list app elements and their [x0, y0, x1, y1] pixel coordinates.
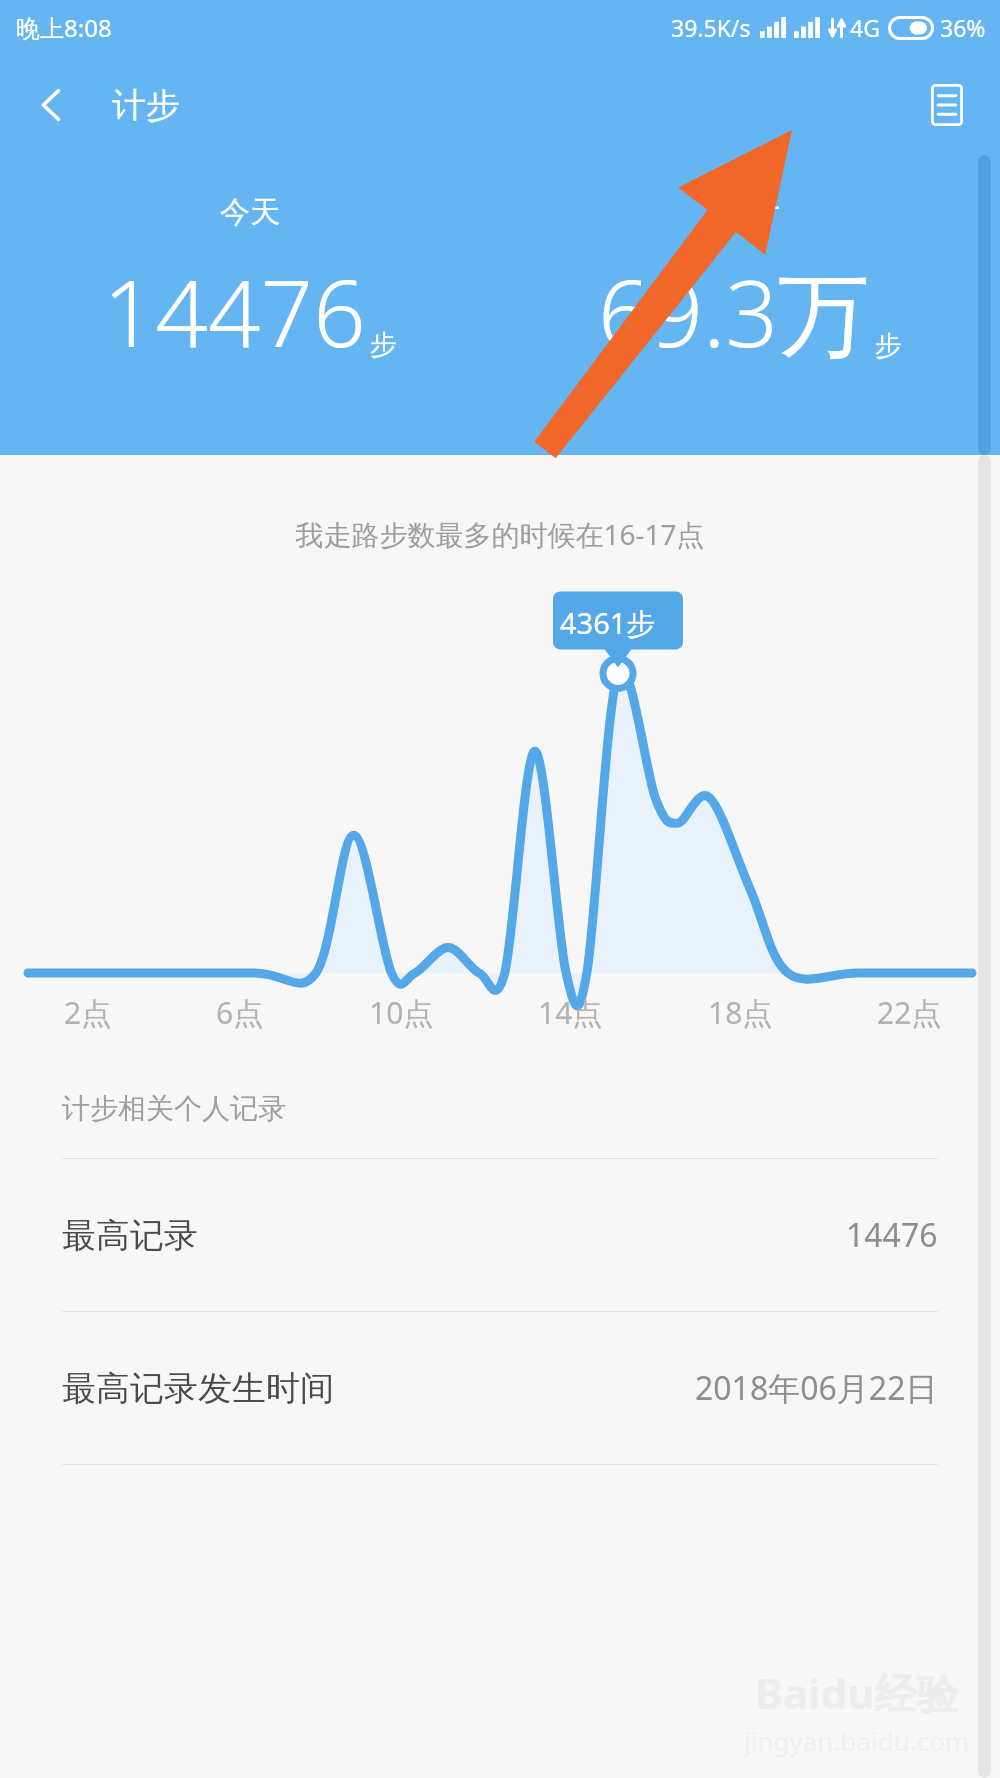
staticText: Baidu经验 [755, 1664, 959, 1721]
staticText: 14476 [846, 1213, 938, 1257]
staticText: 晚上8:08 [16, 11, 112, 44]
staticText: 36% [940, 12, 986, 43]
staticText: 4G [850, 12, 880, 43]
staticText: 计步 [112, 84, 180, 127]
staticText: 步 [370, 328, 397, 362]
button[interactable]: Menu [914, 72, 980, 138]
staticText: 我走路步数最多的时候在16-17点 [0, 515, 1000, 553]
staticText: 18点 [708, 992, 773, 1033]
staticText: 10点 [369, 992, 434, 1033]
button[interactable]: Back [20, 73, 84, 137]
staticText: 今天 [220, 193, 280, 231]
staticText: 14476 [103, 249, 366, 374]
staticText: 22点 [877, 992, 942, 1033]
button[interactable]: 最高记录发生时间 [0, 1312, 1000, 1464]
staticText: 39.5K/s [671, 12, 751, 43]
staticText: 6点 [216, 992, 264, 1033]
staticText: 2018年06月22日 [695, 1366, 938, 1410]
staticText: 总计 [720, 193, 780, 231]
staticText: 4361步 [560, 603, 656, 643]
staticText: 最高记录 [62, 1214, 198, 1257]
staticText: 最高记录发生时间 [62, 1367, 334, 1410]
staticText: 69.3万 [598, 249, 871, 375]
staticText: 步 [875, 329, 902, 363]
staticText: 2点 [64, 992, 112, 1033]
staticText: 计步相关个人记录 [62, 1091, 286, 1126]
button[interactable]: 最高记录 [0, 1159, 1000, 1311]
staticText: 14点 [538, 992, 603, 1033]
